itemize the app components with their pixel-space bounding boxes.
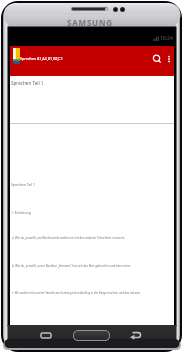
button[interactable]: More options	[165, 53, 173, 65]
staticText: Sprechen A1,A2,B1,B2,C1	[20, 56, 63, 61]
staticText: SAMSUNG	[67, 17, 113, 28]
staticText: a. Wie du, ja weißt, am Wochenende wolle…	[12, 236, 125, 240]
button[interactable]: Home	[73, 330, 110, 341]
button[interactable]: App icon	[13, 48, 20, 64]
staticText: c. Wir wollen mit unserer Familie am Son…	[12, 291, 141, 295]
staticText: b. Wie du, ja weißt, unser Nachbar „Vorn…	[12, 264, 131, 268]
staticText: 1. Einleitung	[11, 210, 31, 215]
button[interactable]: Search	[151, 53, 163, 65]
button[interactable]: Recent apps	[39, 330, 53, 341]
staticText: Sprechen Teil 1	[11, 182, 35, 187]
button[interactable]: Back	[128, 330, 142, 341]
staticText: 10:24	[160, 35, 173, 42]
staticText: Sprechen Teil 1	[11, 80, 44, 86]
